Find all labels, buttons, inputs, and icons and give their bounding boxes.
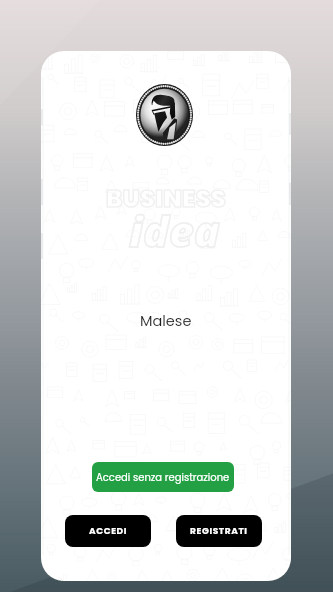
staticText: idea [129,201,220,260]
button[interactable]: ACCEDI [65,515,151,547]
staticText: REGISTRATI [190,525,248,538]
button[interactable]: Accedi senza registrazione [92,462,234,492]
staticText: BUSINESS [106,182,227,216]
staticText: Malese [140,311,192,331]
staticText: Accedi senza registrazione [96,470,230,484]
staticText: ACCEDI [89,525,128,538]
button[interactable]: REGISTRATI [176,515,262,547]
